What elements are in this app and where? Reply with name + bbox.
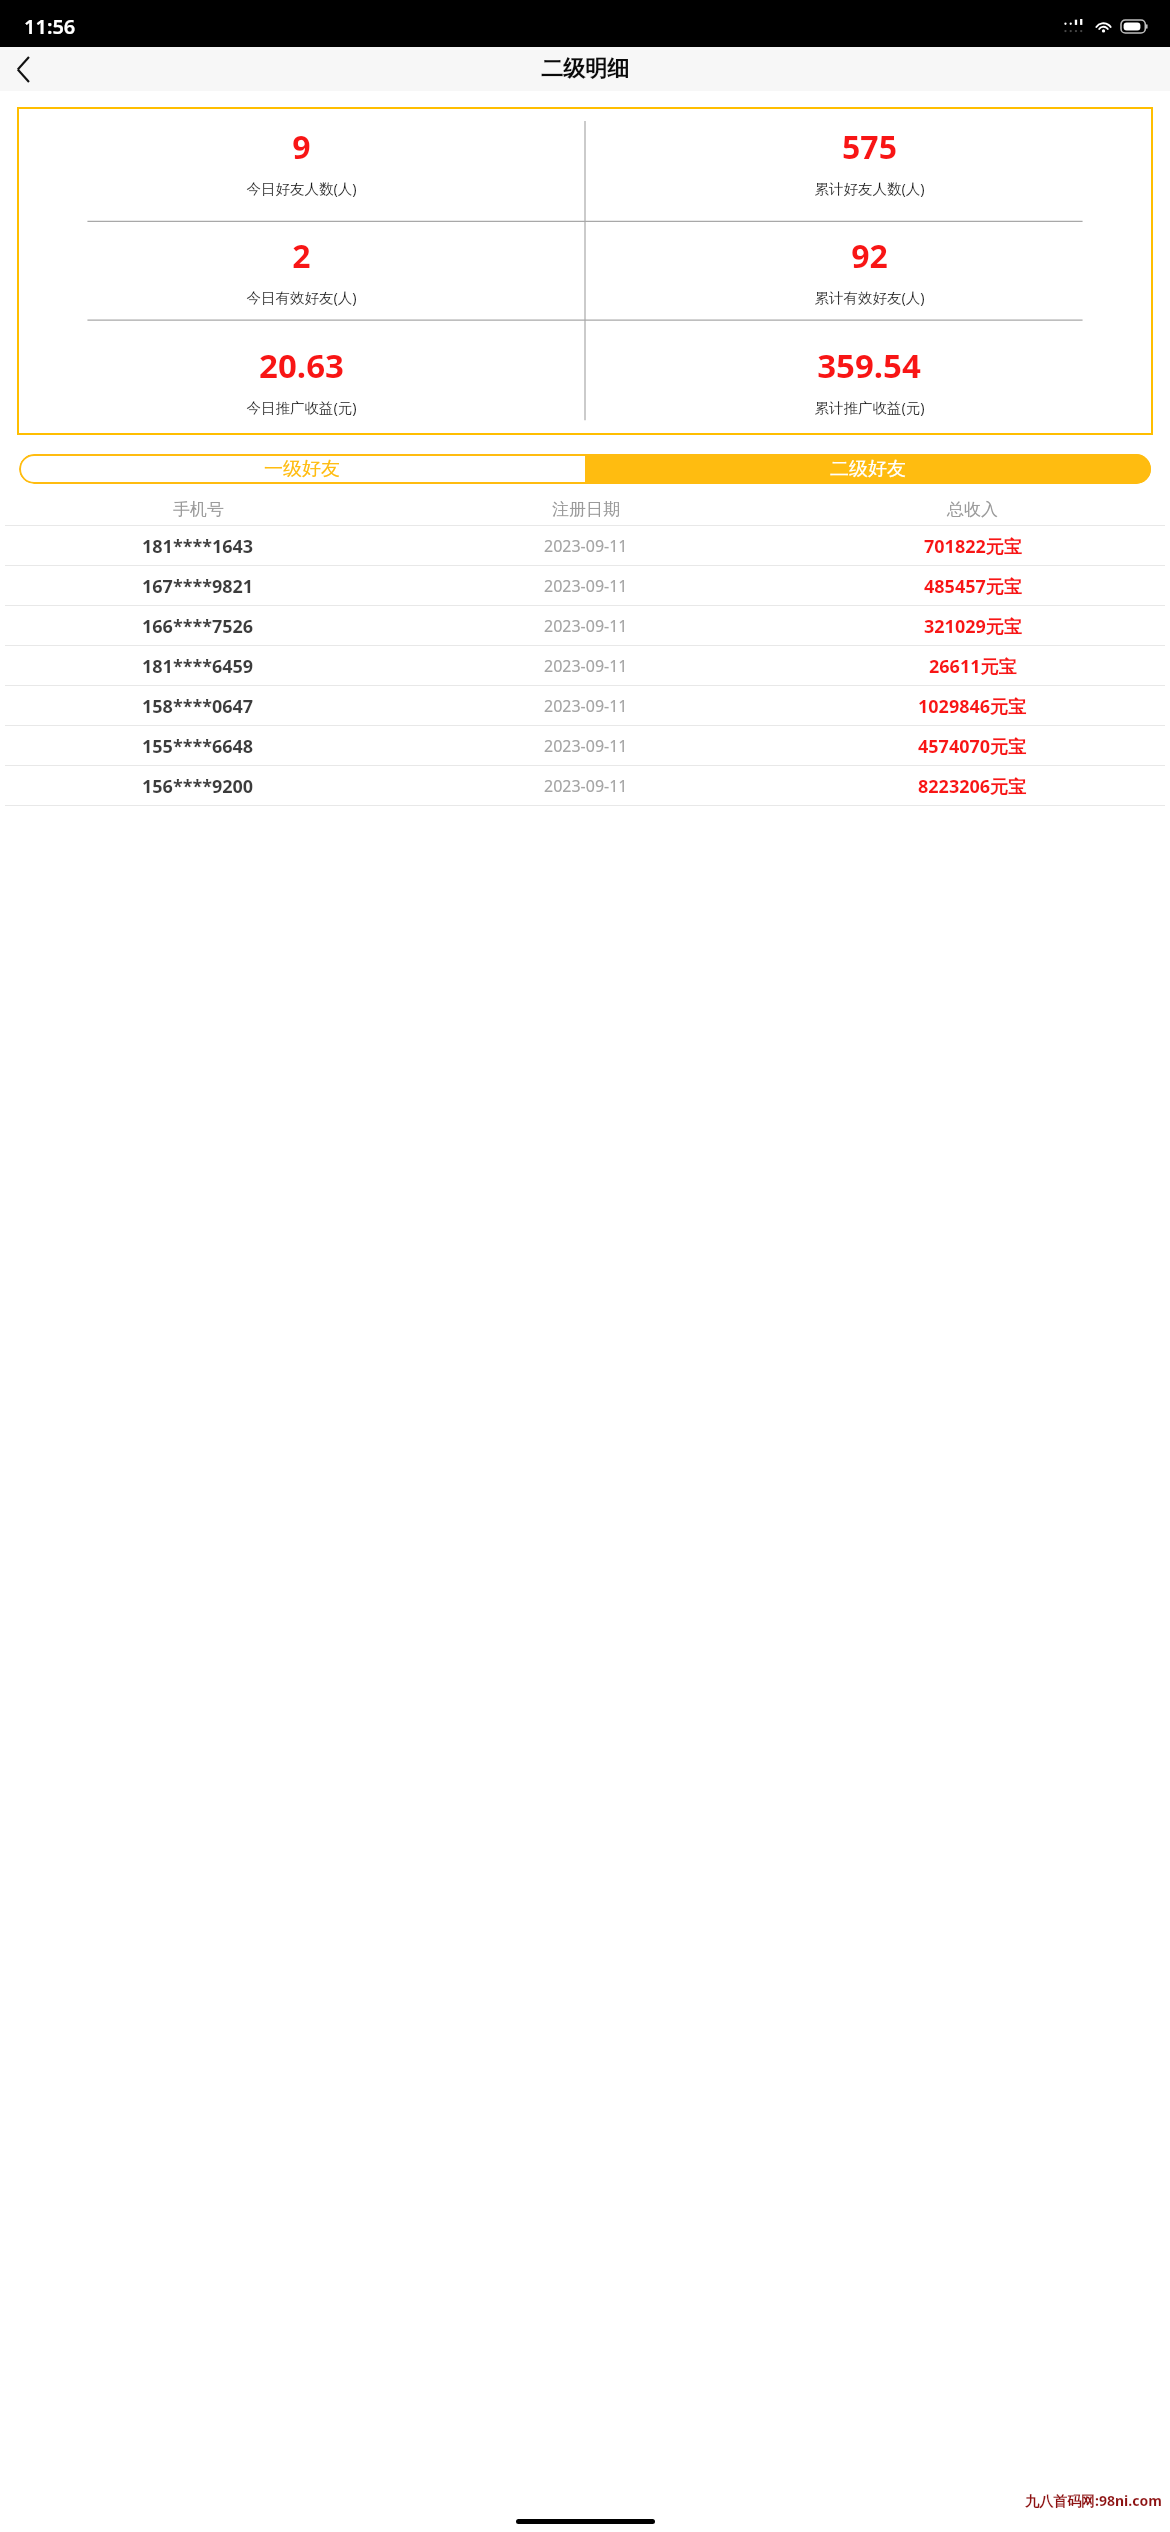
- button[interactable]: 181****1643: [0, 526, 1170, 566]
- staticText: 二级好友: [830, 457, 906, 481]
- button[interactable]: 181****6459: [0, 646, 1170, 686]
- staticText: 今日有效好友(人): [246, 287, 357, 307]
- staticText: 9: [292, 125, 311, 169]
- staticText: 总收入: [947, 499, 998, 520]
- staticText: 累计有效好友(人): [814, 287, 925, 307]
- staticText: 2023-09-11: [544, 775, 628, 797]
- button[interactable]: 二级好友: [585, 454, 1151, 484]
- staticText: 158****0647: [142, 694, 254, 719]
- button[interactable]: 167****9821: [0, 566, 1170, 606]
- staticText: 156****9200: [142, 774, 254, 799]
- staticText: 8223206元宝: [918, 774, 1027, 799]
- staticText: 575: [842, 125, 897, 169]
- staticText: 181****6459: [142, 654, 254, 679]
- staticText: 181****1643: [142, 534, 254, 559]
- staticText: 2023-09-11: [544, 695, 628, 717]
- staticText: 2023-09-11: [544, 575, 628, 597]
- staticText: 2023-09-11: [544, 535, 628, 557]
- staticText: 92: [851, 234, 888, 278]
- staticText: 26611元宝: [929, 654, 1017, 679]
- staticText: 166****7526: [142, 614, 254, 639]
- staticText: 累计好友人数(人): [814, 178, 925, 198]
- staticText: 4574070元宝: [918, 734, 1027, 759]
- staticText: 九八首码网:98ni.com: [1025, 2491, 1162, 2510]
- staticText: 二级明细: [541, 55, 629, 83]
- staticText: 一级好友: [264, 457, 340, 481]
- staticText: 1029846元宝: [918, 694, 1027, 719]
- staticText: 155****6648: [142, 734, 254, 759]
- button[interactable]: 一级好友: [19, 454, 585, 484]
- staticText: 321029元宝: [924, 614, 1022, 639]
- button[interactable]: 155****6648: [0, 726, 1170, 766]
- staticText: 2023-09-11: [544, 655, 628, 677]
- staticText: 累计推广收益(元): [814, 397, 925, 417]
- button[interactable]: 166****7526: [0, 606, 1170, 646]
- staticText: 485457元宝: [924, 574, 1022, 599]
- staticText: 2023-09-11: [544, 735, 628, 757]
- staticText: 167****9821: [142, 574, 254, 599]
- staticText: 注册日期: [552, 499, 620, 520]
- staticText: 20.63: [259, 343, 344, 388]
- staticText: 11:56: [24, 13, 76, 40]
- staticText: 今日好友人数(人): [246, 178, 357, 198]
- staticText: 701822元宝: [924, 534, 1022, 559]
- staticText: 手机号: [173, 499, 224, 520]
- button[interactable]: 156****9200: [0, 766, 1170, 806]
- staticText: 今日推广收益(元): [246, 397, 357, 417]
- button[interactable]: Back: [0, 47, 46, 91]
- staticText: 2023-09-11: [544, 615, 628, 637]
- staticText: 2: [292, 234, 311, 278]
- staticText: 359.54: [817, 343, 921, 388]
- button[interactable]: 158****0647: [0, 686, 1170, 726]
